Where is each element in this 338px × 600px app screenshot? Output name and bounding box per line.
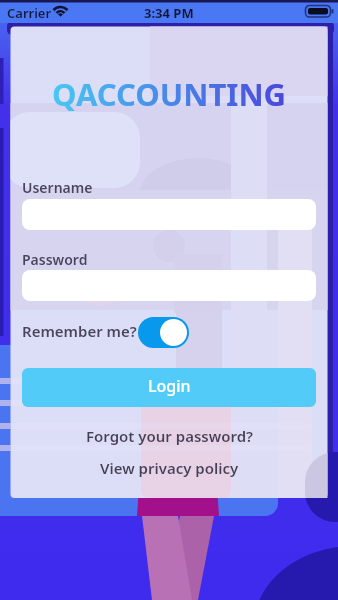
button[interactable]: Login (22, 368, 316, 407)
staticText: 3:34 PM (144, 4, 194, 22)
button[interactable]: Forgot your password? (86, 426, 253, 446)
staticText: Forgot your password? (86, 426, 253, 446)
staticText: Username (22, 178, 93, 197)
staticText: Remember me? (22, 321, 137, 341)
button[interactable]: View privacy policy (100, 458, 239, 478)
staticText: Carrier (7, 4, 52, 22)
button[interactable] (22, 270, 316, 301)
staticText: Login (148, 375, 191, 397)
staticText: QACCOUNTING (52, 73, 287, 115)
button[interactable] (22, 199, 316, 230)
staticText: View privacy policy (100, 458, 239, 478)
staticText: Password (22, 250, 88, 269)
button[interactable] (138, 317, 189, 348)
